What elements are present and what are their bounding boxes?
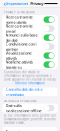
staticText: Ulteriori informazioni	[15, 81, 45, 85]
staticText: Cancella dati dei siti e cronologia	[5, 86, 42, 97]
staticText: ‹	[3, 0, 5, 8]
button[interactable]: Ricerca tramite nome utente	[2, 15, 57, 24]
staticText: Le tue informazioni sono gestite con la …	[4, 114, 56, 124]
staticText: Condivisione con i partner	[5, 41, 36, 52]
staticText: Impostazioni	[6, 1, 28, 6]
button[interactable]: Notifiche attività basate su	[2, 60, 57, 69]
button[interactable]: ‹	[2, 0, 29, 7]
staticText: Controlla in che modo le informazioni ve…	[4, 70, 56, 81]
staticText: PRIVACY DI FACEBOOK	[4, 11, 35, 14]
button[interactable]: Dati sulla localizzazione offline	[2, 104, 57, 112]
button[interactable]: Condivisione con i partner	[2, 42, 57, 51]
staticText: Dati sulla localizzazione offline	[5, 103, 41, 113]
staticText: Privacy	[30, 1, 43, 6]
button[interactable]: Ricerca tramite email	[2, 24, 57, 33]
staticText: Ricerca tramite nome utente	[5, 14, 32, 25]
staticText: Avanzate	[5, 129, 21, 131]
staticText: Annunci sulla base dei dati	[5, 32, 37, 43]
staticText: Notifiche attività basate su	[5, 59, 32, 70]
button[interactable]: Avanzate	[2, 127, 57, 131]
staticText: Visualizzazione attività	[5, 50, 31, 61]
button[interactable]: Annunci sulla base dei dati	[2, 33, 57, 42]
staticText: SICUREZZA E POSIZIONE	[4, 99, 36, 103]
staticText: Ricerca tramite email	[5, 23, 32, 34]
button[interactable]: Visualizzazione attività	[2, 51, 57, 60]
button[interactable]: Cancella dati dei siti e cronologia	[2, 87, 57, 96]
